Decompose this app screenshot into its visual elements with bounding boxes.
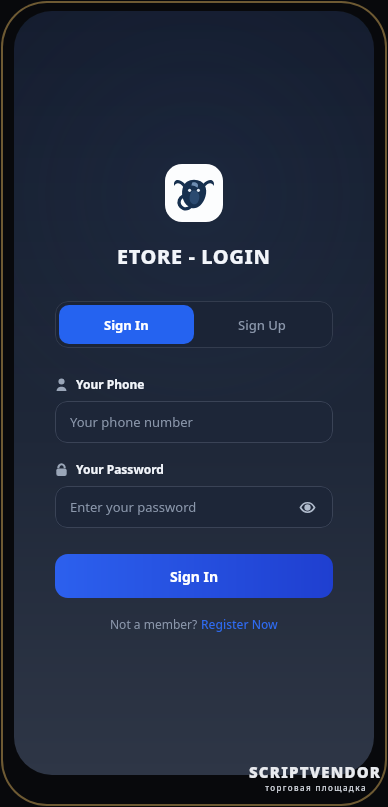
- staticText: Sign In: [170, 567, 219, 586]
- button[interactable]: Sign In: [55, 554, 333, 598]
- staticText: Your Phone: [76, 376, 145, 392]
- staticText: Not a member?: [110, 616, 201, 632]
- staticText: Register Now: [201, 616, 278, 632]
- staticText: SCRIPTVENDOR: [249, 762, 382, 782]
- button[interactable]: Register Now: [201, 616, 278, 632]
- staticText: Sign In: [104, 316, 149, 334]
- button[interactable]: Sign Up: [194, 305, 329, 344]
- staticText: Your phone number: [70, 413, 193, 431]
- staticText: торговая площадка: [265, 782, 367, 793]
- staticText: ETORE - LOGIN: [117, 243, 271, 270]
- staticText: Enter your password: [70, 498, 197, 516]
- button[interactable]: Sign In: [59, 305, 194, 344]
- staticText: Sign Up: [238, 316, 286, 334]
- button[interactable]: Enter your password: [55, 486, 333, 528]
- button[interactable]: Your phone number: [55, 401, 333, 443]
- button[interactable]: Show password: [296, 496, 318, 518]
- staticText: Your Password: [76, 461, 164, 477]
